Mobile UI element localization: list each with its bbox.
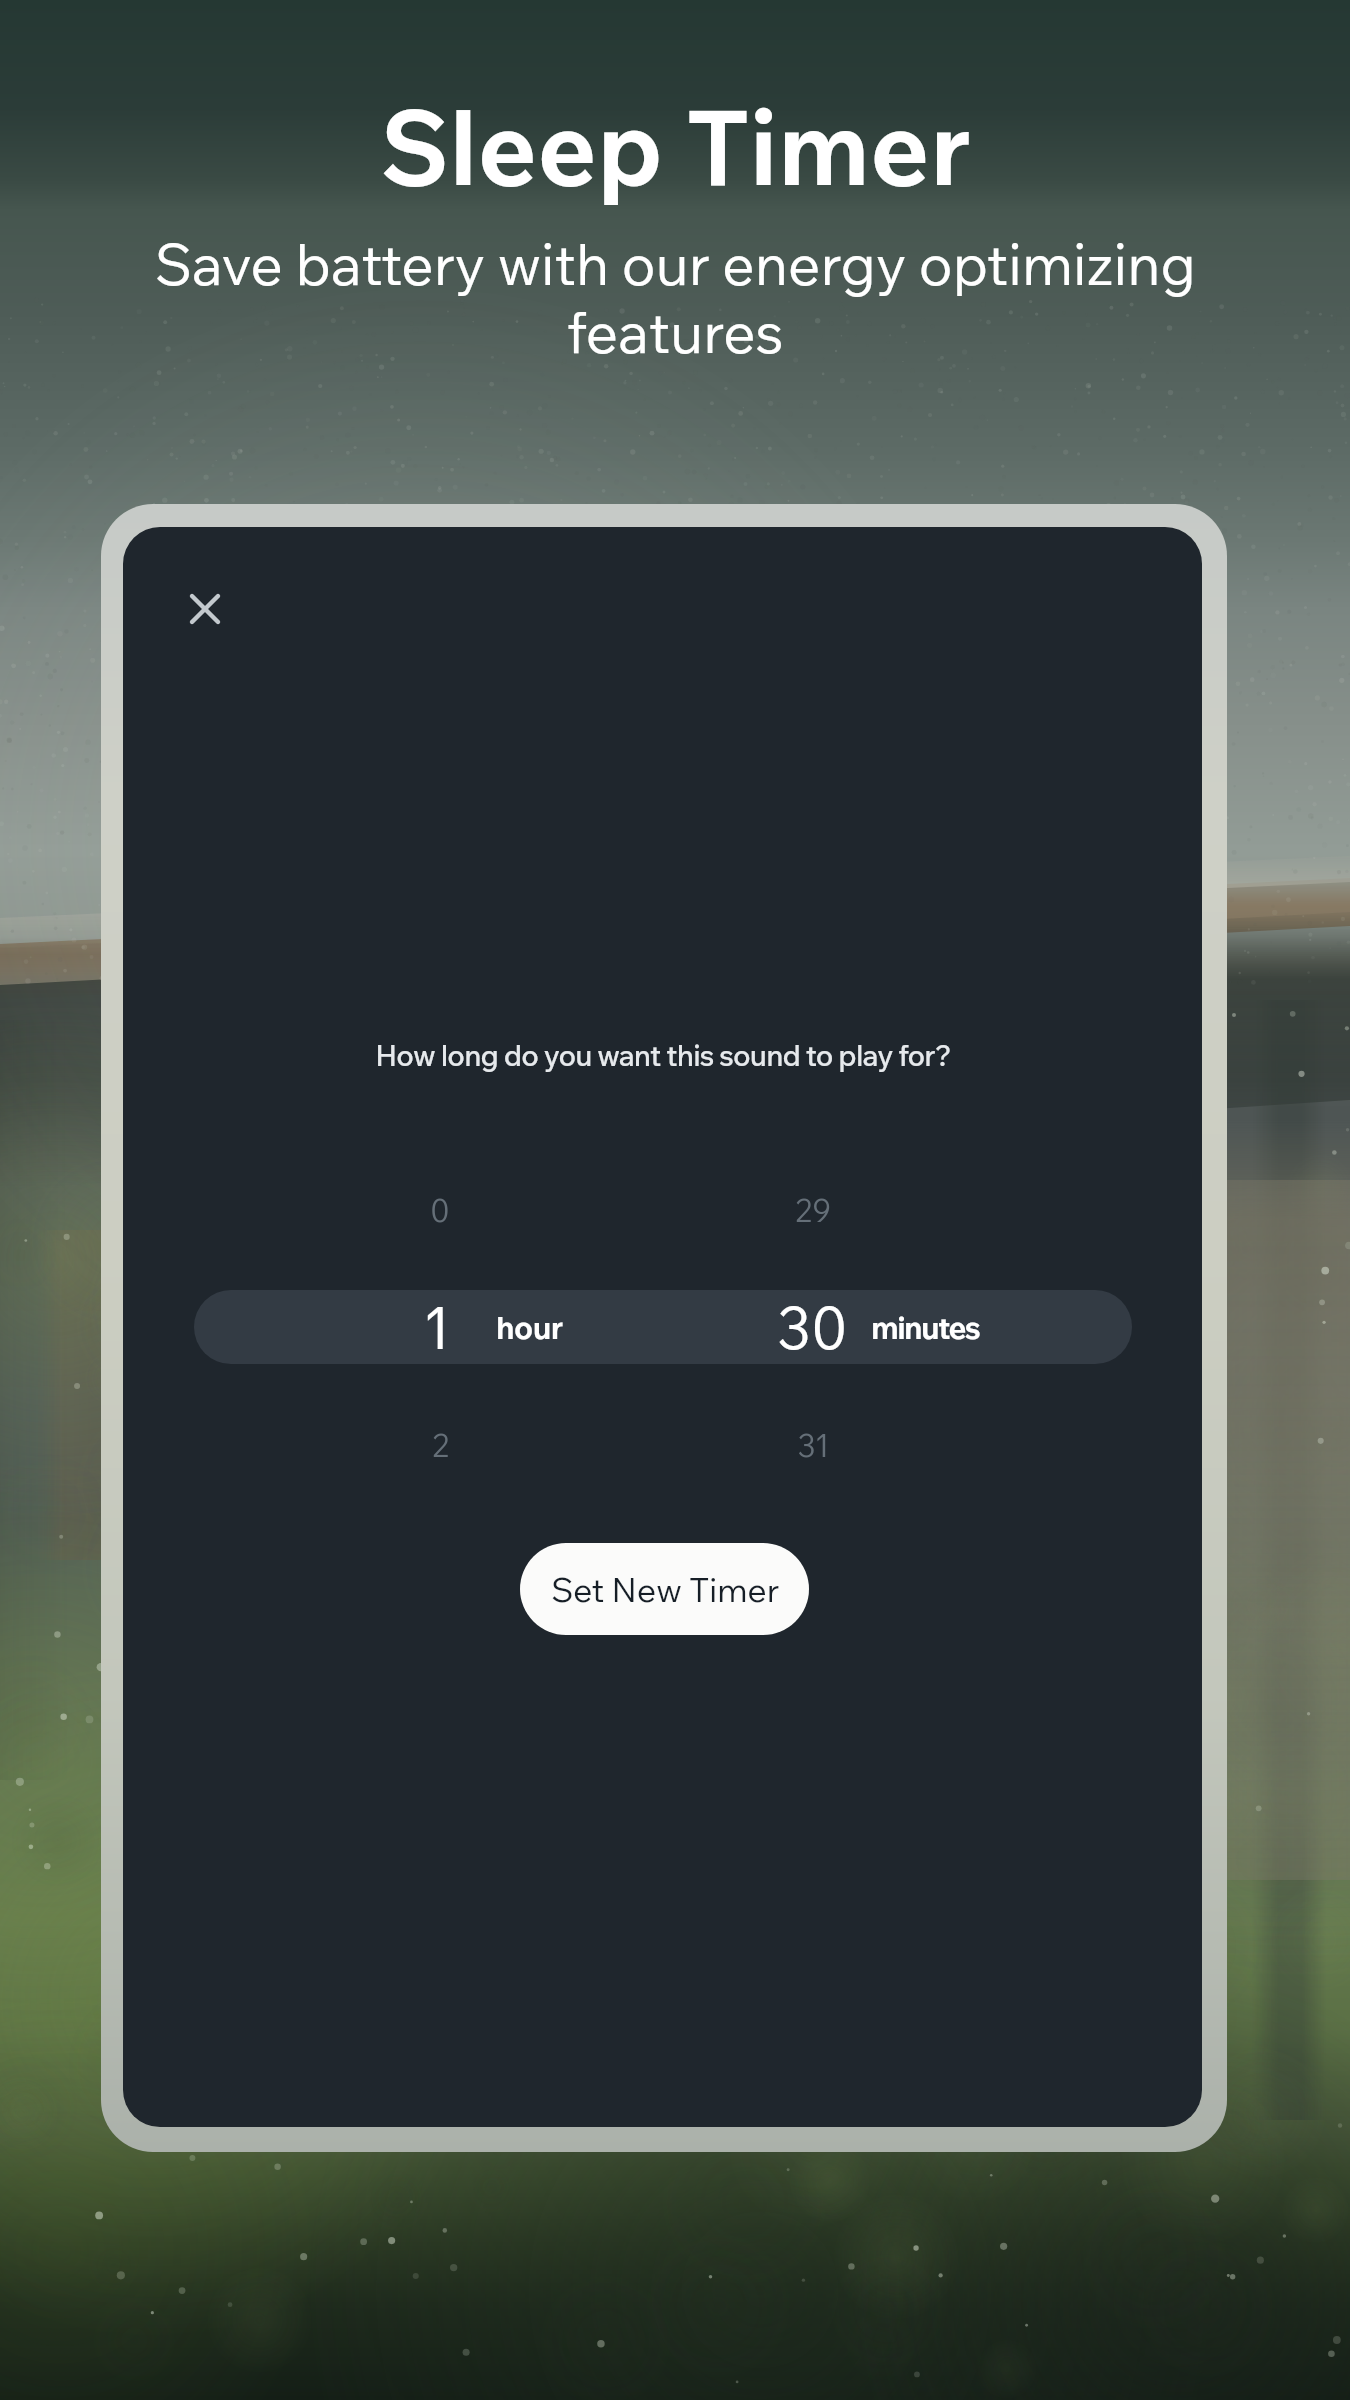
staticText: 29 bbox=[795, 1191, 831, 1230]
staticText: minutes bbox=[871, 1308, 980, 1347]
staticText: 1 bbox=[423, 1291, 451, 1364]
button[interactable]: 31 bbox=[733, 1405, 893, 1485]
staticText: hour bbox=[496, 1308, 563, 1347]
button[interactable]: 29 bbox=[733, 1170, 893, 1250]
button[interactable]: 2 bbox=[360, 1405, 520, 1485]
button[interactable]: Close bbox=[173, 577, 237, 641]
button[interactable]: 1 bbox=[194, 1290, 1132, 1364]
staticText: 31 bbox=[797, 1426, 830, 1465]
staticText: Set New Timer bbox=[551, 1568, 779, 1611]
button[interactable]: 0 bbox=[360, 1170, 520, 1250]
staticText: 2 bbox=[432, 1426, 449, 1465]
staticText: Save battery with our energy optimizing … bbox=[80, 228, 1270, 367]
staticText: 0 bbox=[430, 1191, 450, 1230]
staticText: How long do you want this sound to play … bbox=[375, 1037, 951, 1074]
button[interactable]: Set New Timer bbox=[520, 1543, 809, 1635]
staticText: Sleep Timer bbox=[380, 81, 971, 211]
staticText: 30 bbox=[777, 1291, 848, 1364]
